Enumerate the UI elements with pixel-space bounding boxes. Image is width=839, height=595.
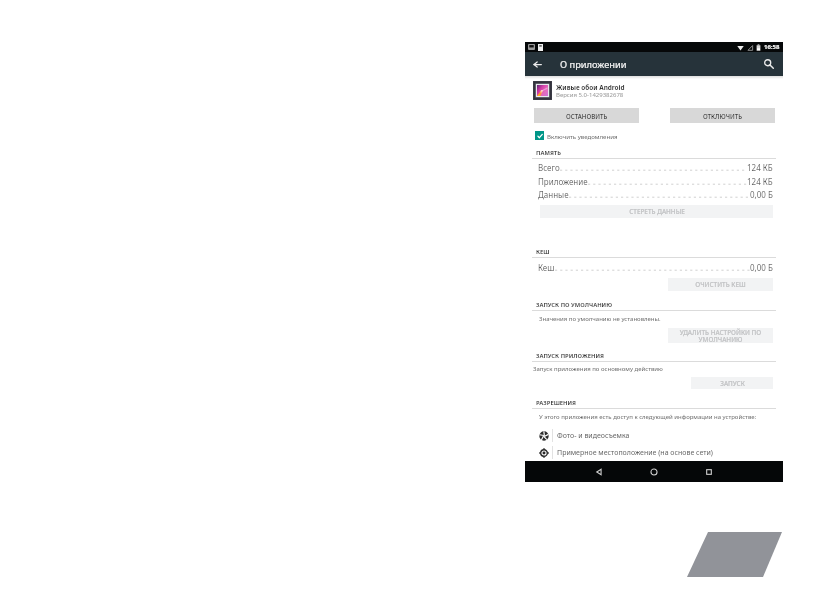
- staticText: Значения по умолчанию не установлены.: [539, 315, 661, 323]
- button[interactable]: Search: [757, 52, 781, 76]
- staticText: РАЗРЕШЕНИЯ: [536, 399, 577, 407]
- staticText: Примерное местоположение (на основе сети…: [557, 448, 713, 458]
- staticText: Запуск приложения по основному действию: [533, 365, 663, 373]
- staticText: СТЕРЕТЬ ДАННЫЕ: [629, 207, 685, 216]
- staticText: ПАМЯТЬ: [536, 149, 561, 157]
- staticText: 0,00 Б: [750, 189, 773, 200]
- staticText: 124 КБ: [747, 176, 773, 187]
- staticText: ЗАПУСК ПО УМОЛЧАНИЮ: [536, 301, 613, 309]
- staticText: Всего: [538, 162, 560, 173]
- button[interactable]: ОТКЛЮЧИТЬ: [670, 108, 775, 123]
- button[interactable]: Back: [525, 52, 549, 76]
- button[interactable]: Кеш: [525, 261, 783, 274]
- staticText: 16:58: [764, 43, 780, 51]
- button[interactable]: Включить уведомления: [535, 131, 618, 140]
- staticText: О приложении: [560, 58, 627, 71]
- staticText: 124 КБ: [747, 162, 773, 173]
- staticText: ЗАПУСК ПРИЛОЖЕНИЯ: [536, 352, 604, 360]
- staticText: 0,00 Б: [750, 262, 773, 273]
- staticText: Данные: [538, 189, 569, 200]
- staticText: Фото- и видеосъемка: [557, 431, 630, 441]
- button[interactable]: Home: [637, 461, 671, 482]
- staticText: Приложение: [538, 176, 588, 187]
- staticText: ОСТАНОВИТЬ: [566, 112, 608, 120]
- button[interactable]: Всего: [525, 161, 783, 174]
- staticText: Включить уведомления: [547, 132, 618, 140]
- staticText: Версия 5.0-1429382678: [556, 91, 624, 99]
- button[interactable]: ОСТАНОВИТЬ: [534, 108, 639, 123]
- button[interactable]: СТЕРЕТЬ ДАННЫЕ: [540, 205, 773, 218]
- staticText: КЕШ: [536, 248, 550, 256]
- button[interactable]: ЗАПУСК: [691, 377, 773, 389]
- button[interactable]: Примерное местоположение (на основе сети…: [525, 445, 783, 460]
- staticText: Живые обои Android: [556, 83, 625, 92]
- staticText: УДАЛИТЬ НАСТРОЙКИ ПО УМОЛЧАНИЮ: [668, 328, 773, 343]
- button[interactable]: ОЧИСТИТЬ КЕШ: [668, 278, 773, 291]
- button[interactable]: УДАЛИТЬ НАСТРОЙКИ ПО УМОЛЧАНИЮ: [668, 328, 773, 343]
- staticText: У этого приложения есть доступ к следующ…: [539, 413, 757, 421]
- button[interactable]: Фото- и видеосъемка: [525, 428, 783, 443]
- staticText: ОЧИСТИТЬ КЕШ: [695, 280, 746, 289]
- button[interactable]: Данные: [525, 188, 783, 201]
- staticText: ОТКЛЮЧИТЬ: [703, 112, 742, 120]
- staticText: Кеш: [538, 262, 555, 273]
- button[interactable]: Приложение: [525, 175, 783, 188]
- button[interactable]: Back: [582, 461, 616, 482]
- staticText: ЗАПУСК: [720, 379, 745, 388]
- button[interactable]: Recent apps: [692, 461, 726, 482]
